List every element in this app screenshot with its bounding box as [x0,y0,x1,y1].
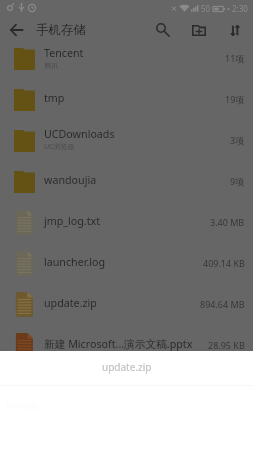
staticText: tmp [44,91,65,106]
staticText: Tencent [44,46,84,61]
staticText: wandoujia [44,173,97,188]
button[interactable]: update.zip [0,284,253,325]
staticText: 腾讯 [44,61,58,70]
staticText: 3项 [230,134,245,146]
button[interactable]: Tencent [0,38,253,79]
staticText: 3.40 MB [210,216,245,228]
button[interactable]: wandoujia [0,161,253,202]
button[interactable]: Sort [222,17,248,43]
button[interactable]: Back [2,16,30,44]
button[interactable]: Search [150,17,176,43]
button[interactable]: tmp [0,79,253,120]
button[interactable]: launcher.log [0,243,253,284]
button[interactable]: New folder [186,17,212,43]
staticText: 50 [201,3,211,14]
staticText: 手机存储 [36,22,86,38]
staticText: update.zip [44,296,97,311]
staticText: jmp_log.txt [44,214,101,229]
staticText: 11项 [225,52,245,64]
staticText: 28.95 KB [208,339,245,351]
staticText: 2:30 [232,3,248,14]
staticText: 409.14 KB [203,257,245,269]
staticText: UCDownloads [44,127,115,142]
staticText: 894.64 MB [200,298,245,310]
staticText: UC浏览器 [44,142,75,152]
button[interactable]: UCDownloads [0,120,253,161]
staticText: update.zip [102,360,152,374]
staticText: launcher.log [44,255,106,270]
staticText: 9项 [230,175,245,187]
button[interactable]: 新建 Microsoft...演示文稿.pptx [0,325,253,366]
staticText: 新建 Microsoft...演示文稿.pptx [44,337,193,352]
button[interactable]: jmp_log.txt [0,202,253,243]
staticText: 19项 [225,93,245,105]
